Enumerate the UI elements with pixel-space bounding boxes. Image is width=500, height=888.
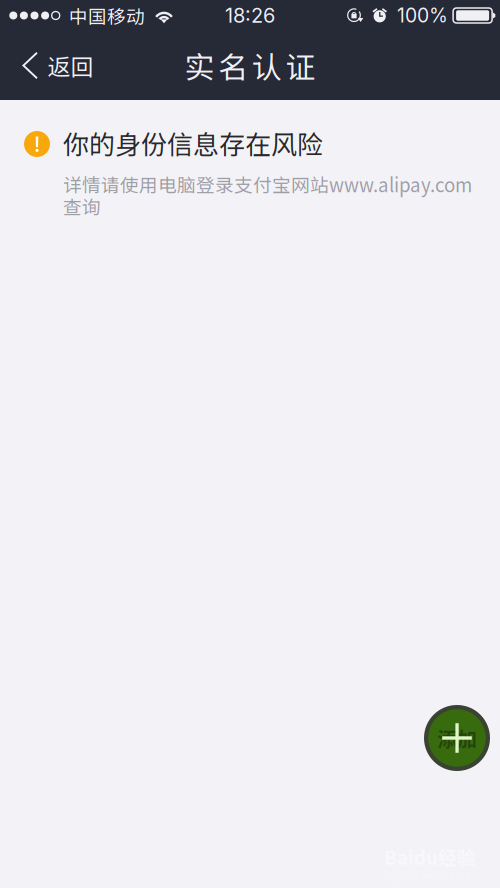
staticText: 中国移动 (69, 2, 145, 29)
staticText: 详情请使用电脑登录支付宝网站www.alipay.com查询 (63, 171, 472, 220)
staticText: 100% (397, 4, 448, 27)
button[interactable]: Add (424, 705, 490, 771)
button[interactable]: 返回 (0, 31, 107, 100)
staticText: 实名认证 (185, 44, 315, 87)
staticText: 18:26 (225, 3, 275, 28)
staticText: 返回 (47, 49, 93, 82)
staticText: 你的身份信息存在风险 (63, 124, 323, 162)
staticText: 添加 (437, 723, 477, 752)
